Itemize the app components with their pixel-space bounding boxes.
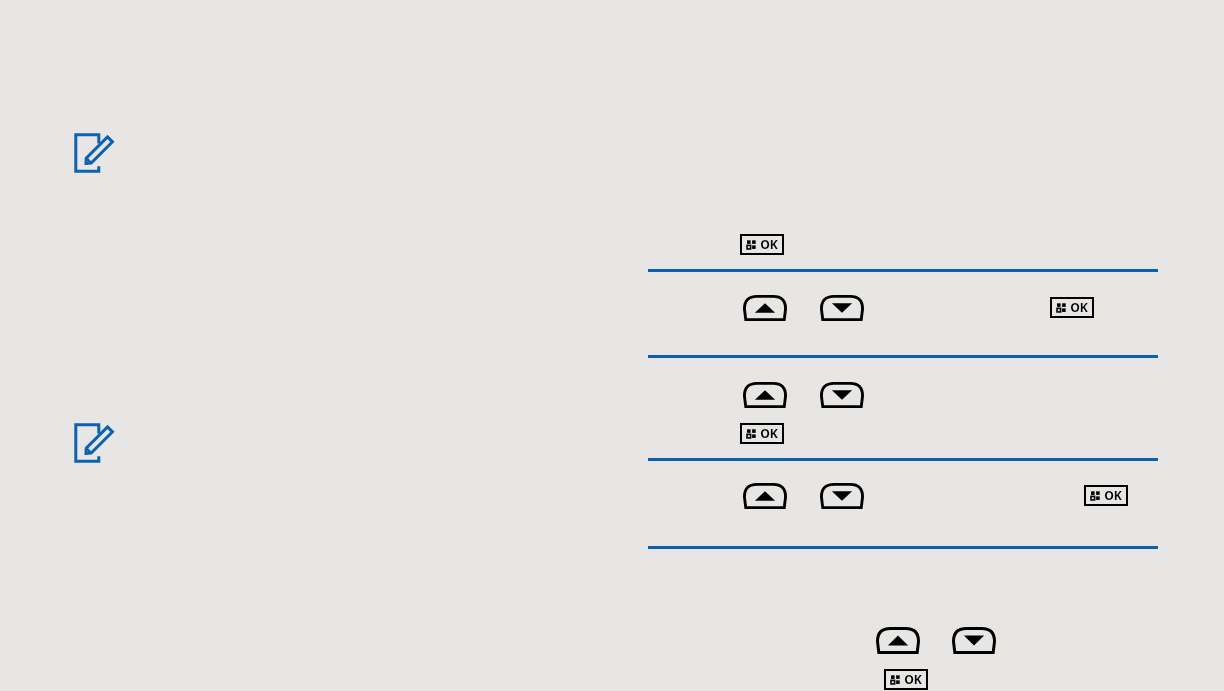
button[interactable]: Scroll down bbox=[820, 382, 864, 408]
button[interactable]: OK bbox=[740, 423, 784, 444]
other: Notice bbox=[74, 133, 114, 173]
button[interactable]: OK bbox=[1084, 485, 1128, 506]
button[interactable]: Scroll up bbox=[743, 382, 787, 408]
staticText: OK bbox=[760, 236, 778, 253]
button[interactable]: Scroll down bbox=[820, 295, 864, 321]
staticText: OK bbox=[760, 425, 778, 442]
button[interactable]: Scroll down bbox=[952, 627, 996, 654]
button[interactable]: Scroll down bbox=[820, 483, 864, 509]
button[interactable]: OK bbox=[1050, 297, 1094, 318]
button[interactable]: Scroll up bbox=[876, 627, 920, 654]
button[interactable]: OK bbox=[740, 234, 784, 255]
other: Notice bbox=[74, 423, 114, 463]
staticText: OK bbox=[1104, 487, 1122, 504]
staticText: OK bbox=[904, 671, 922, 688]
button[interactable]: OK bbox=[884, 669, 928, 690]
button[interactable]: Scroll up bbox=[743, 295, 787, 321]
staticText: OK bbox=[1070, 299, 1088, 316]
button[interactable]: Scroll up bbox=[743, 483, 787, 509]
